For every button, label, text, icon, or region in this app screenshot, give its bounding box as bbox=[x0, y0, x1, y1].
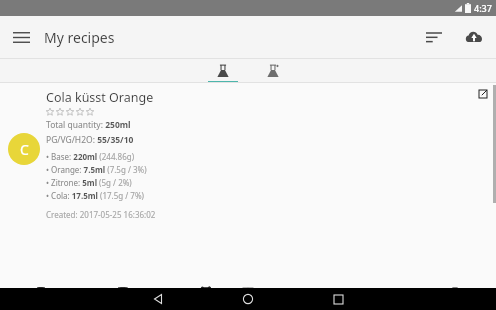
button[interactable]: Back bbox=[113, 288, 203, 310]
button[interactable]: Home bbox=[203, 288, 293, 310]
staticText: Cola küsst Orange bbox=[46, 89, 154, 106]
button[interactable]: Cola küsst Orange bbox=[0, 83, 496, 288]
staticText: C bbox=[20, 140, 29, 159]
staticText: 4:37 bbox=[474, 2, 492, 14]
staticText: • Cola: 17.5ml (17.5g / 7%) bbox=[46, 190, 144, 201]
staticText: Total quantity: 250ml bbox=[46, 119, 131, 131]
staticText: PG/VG/H2O: 55/35/10 bbox=[46, 134, 134, 146]
staticText: • Zitrone: 5ml (5g / 2%) bbox=[46, 177, 132, 188]
button[interactable]: New recipe tab bbox=[248, 59, 298, 83]
button[interactable]: Recent apps bbox=[293, 288, 383, 310]
button[interactable]: Upload to cloud bbox=[454, 17, 494, 57]
button[interactable]: Edit recipe bbox=[476, 87, 490, 101]
button[interactable]: Open navigation drawer bbox=[0, 16, 42, 58]
staticText: Created: 2017-05-25 16:36:02 bbox=[46, 209, 156, 220]
staticText: • Base: 220ml (244.86g) bbox=[46, 151, 135, 162]
button[interactable]: Recipes tab bbox=[198, 59, 248, 83]
staticText: • Orange: 7.5ml (7.5g / 3%) bbox=[46, 164, 147, 175]
button[interactable]: Sort bbox=[414, 17, 454, 57]
staticText: My recipes bbox=[44, 28, 115, 47]
